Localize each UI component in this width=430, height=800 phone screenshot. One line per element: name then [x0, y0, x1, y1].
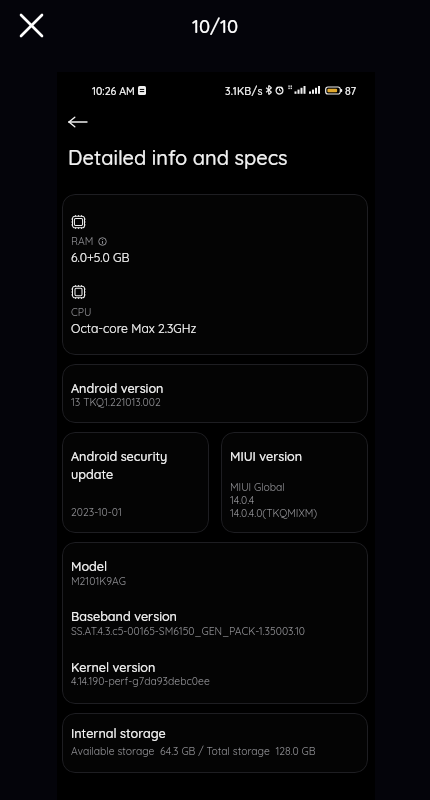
button[interactable]: MIUI version — [221, 432, 368, 533]
button[interactable]: RAM — [62, 194, 368, 355]
staticText: update — [71, 466, 114, 482]
staticText: 13 TKQ1.221013.002 — [71, 396, 161, 409]
staticText: M2101K9AG — [71, 575, 126, 588]
staticText: Baseband version — [71, 608, 177, 624]
staticText: Internal storage — [71, 725, 166, 741]
staticText: RAM — [71, 235, 94, 248]
staticText: Kernel version — [71, 659, 156, 675]
staticText: Available storage 64.3 GB / Total storag… — [71, 745, 316, 758]
button[interactable]: Model — [62, 542, 368, 704]
staticText: 14.0.4 — [230, 494, 255, 507]
button[interactable]: Internal storage — [62, 713, 368, 773]
staticText: 10/10 — [192, 14, 239, 37]
button[interactable]: Android version — [62, 364, 368, 423]
staticText: Android version — [71, 380, 164, 396]
staticText: MIUI Global — [230, 481, 285, 494]
staticText: 2023-10-01 — [71, 506, 122, 519]
staticText: Model — [71, 558, 108, 574]
staticText: CPU — [71, 306, 92, 319]
staticText: 4.14.190-perf-g7da93debc0ee — [71, 675, 210, 688]
staticText: 6.0+5.0 GB — [71, 250, 130, 265]
button[interactable]: Close — [11, 5, 51, 45]
staticText: Detailed info and specs — [68, 145, 288, 170]
staticText: 14.0.4.0(TKQMIXM) — [230, 507, 318, 520]
staticText: Android security — [71, 448, 168, 464]
staticText: SS.AT.4.3.c5-00165-SM6150_GEN_PACK-1.350… — [71, 625, 305, 638]
staticText: 87 — [345, 84, 357, 97]
button[interactable]: Android security — [62, 432, 209, 533]
staticText: 3.1KB/s — [225, 84, 263, 97]
staticText: 10:26 AM — [92, 84, 135, 97]
button[interactable]: Back — [63, 108, 91, 136]
staticText: Octa-core Max 2.3GHz — [71, 321, 197, 336]
staticText: MIUI version — [230, 448, 303, 464]
